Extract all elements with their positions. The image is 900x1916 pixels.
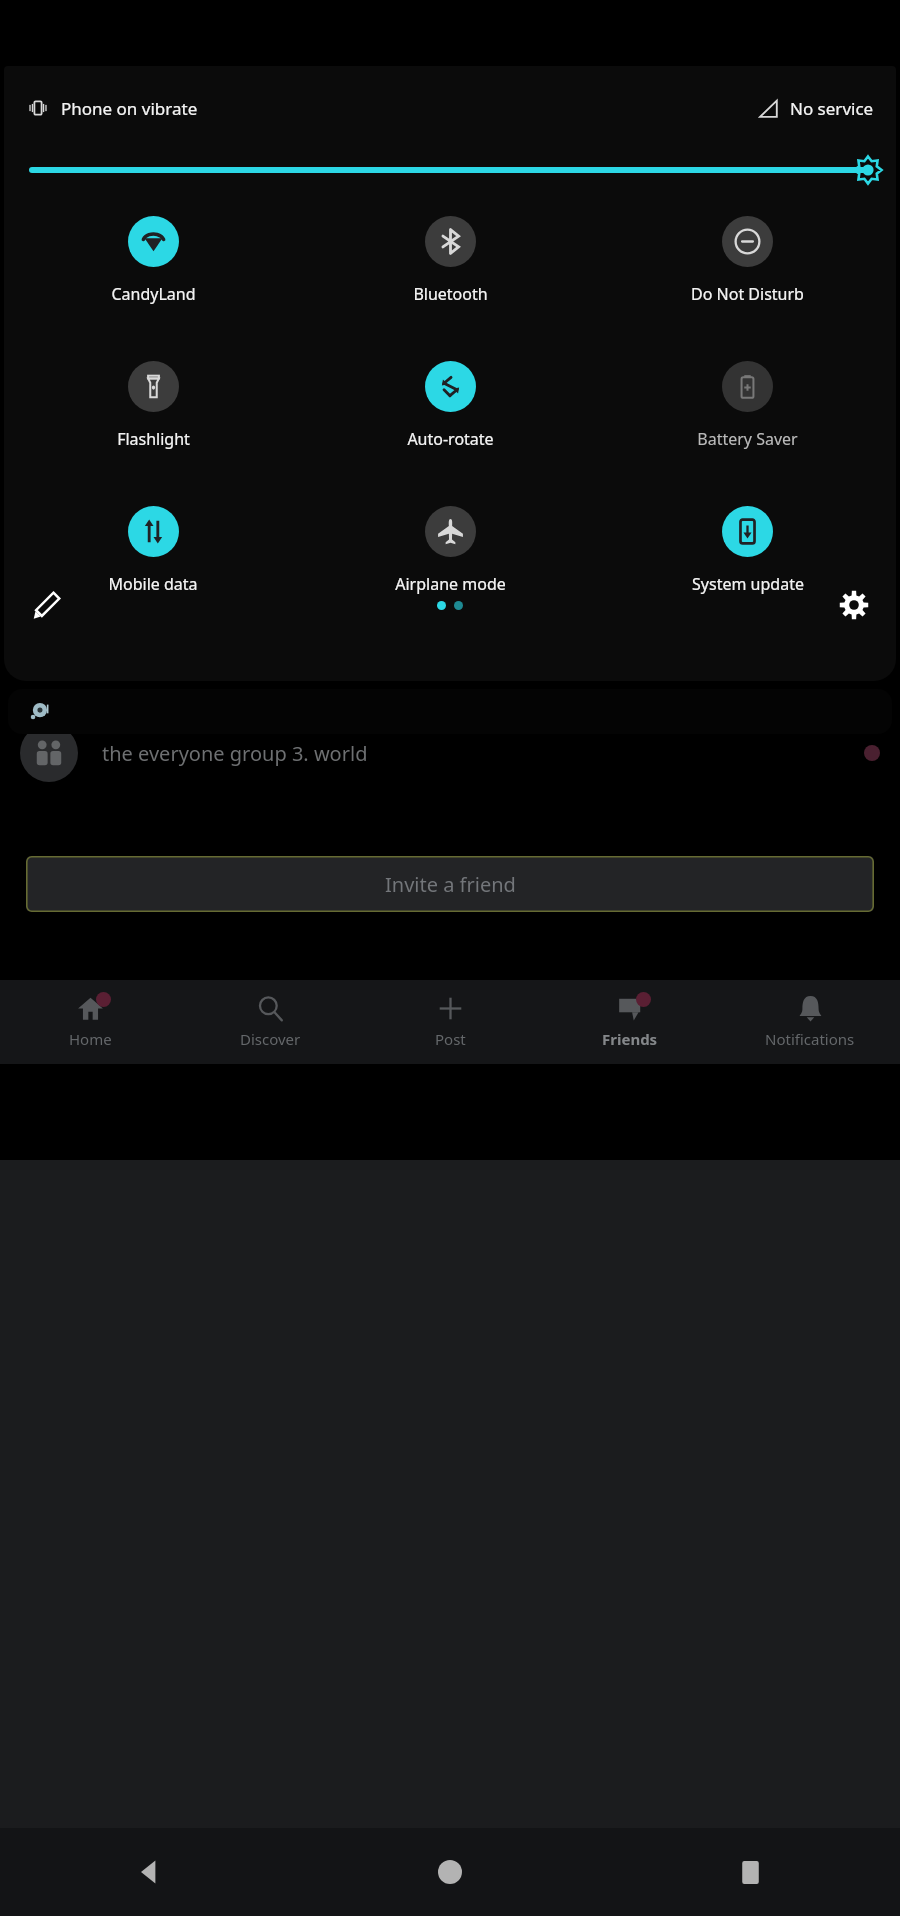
button[interactable]: Post — [360, 980, 540, 1064]
staticText: Discover — [240, 1029, 301, 1049]
staticText: Phone on vibrate — [61, 97, 198, 120]
staticText: the everyone group 3. world — [102, 740, 368, 767]
button[interactable]: Edit tiles — [18, 577, 74, 633]
staticText: No service — [790, 97, 874, 120]
staticText: Home — [69, 1029, 112, 1049]
staticText: Mobile data — [108, 573, 198, 595]
button[interactable] — [4, 142, 896, 198]
staticText: System update — [692, 573, 804, 595]
staticText: Battery Saver — [697, 428, 798, 450]
button[interactable]: Home — [0, 980, 180, 1064]
button[interactable]: No service — [753, 93, 878, 124]
staticText: Notifications — [765, 1029, 855, 1049]
button[interactable] — [8, 689, 892, 734]
button[interactable]: Back — [0, 1828, 300, 1916]
staticText: Post — [435, 1029, 466, 1049]
button[interactable]: Flashlight — [4, 359, 302, 452]
button[interactable]: Battery Saver — [599, 359, 896, 452]
button[interactable]: Settings — [826, 577, 882, 633]
button[interactable]: CandyLand — [4, 214, 302, 307]
button[interactable]: Airplane mode — [302, 504, 599, 597]
button[interactable]: Auto-rotate — [302, 359, 599, 452]
staticText: Friends — [602, 1029, 658, 1049]
button[interactable]: Bluetooth — [302, 214, 599, 307]
button[interactable]: Invite a friend — [26, 856, 874, 912]
button[interactable]: Mobile data — [4, 504, 302, 597]
button[interactable]: Home — [300, 1828, 600, 1916]
staticText: Do Not Disturb — [691, 283, 804, 305]
button[interactable]: the everyone group 3. world — [20, 724, 880, 782]
staticText: Flashlight — [117, 428, 190, 450]
staticText: Auto-rotate — [407, 428, 494, 450]
button[interactable]: Discover — [180, 980, 360, 1064]
button[interactable]: Notifications — [720, 980, 900, 1064]
button[interactable]: Do Not Disturb — [599, 214, 896, 307]
button[interactable]: System update — [599, 504, 896, 597]
staticText: CandyLand — [111, 283, 196, 305]
staticText: Bluetooth — [413, 283, 488, 305]
button[interactable]: Recent apps — [600, 1828, 900, 1916]
button[interactable]: Phone on vibrate — [22, 92, 202, 124]
staticText: Invite a friend — [385, 871, 516, 898]
button[interactable]: Friends — [540, 980, 720, 1064]
staticText: Airplane mode — [395, 573, 506, 595]
